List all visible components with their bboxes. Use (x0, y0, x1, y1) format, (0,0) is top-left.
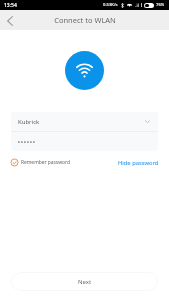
button[interactable]: Next (11, 272, 158, 291)
staticText: Hide password (118, 159, 159, 167)
button[interactable]: Kubrick (11, 112, 158, 131)
button[interactable]: Back (0, 11, 19, 30)
staticText: Next (78, 278, 92, 286)
button[interactable] (11, 132, 158, 151)
staticText: Kubrick (18, 118, 40, 126)
button[interactable]: Remember password (10, 158, 70, 167)
staticText: Connect to WLAN (54, 15, 116, 25)
staticText: 0.53K/s (103, 2, 118, 8)
staticText: 13:54 (4, 2, 17, 9)
staticText: 76% (156, 2, 165, 8)
staticText: Remember password (21, 159, 70, 166)
button[interactable]: Hide password (118, 159, 159, 167)
